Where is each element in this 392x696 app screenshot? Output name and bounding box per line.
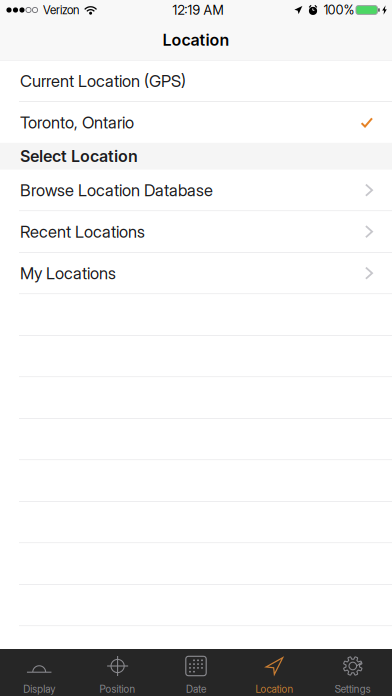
staticText: 12:19 AM — [172, 2, 223, 18]
button[interactable]: Current Location (GPS) — [0, 61, 392, 101]
button[interactable]: Recent Locations — [0, 211, 392, 252]
button[interactable]: Display — [0, 649, 78, 696]
button[interactable]: Toronto, Ontario — [0, 102, 392, 143]
staticText: Select Location — [20, 147, 138, 166]
staticText: Current Location (GPS) — [20, 71, 186, 91]
staticText: Toronto, Ontario — [20, 112, 134, 132]
staticText: Verizon — [43, 3, 79, 17]
staticText: Recent Locations — [20, 222, 145, 242]
staticText: My Locations — [20, 263, 116, 283]
button[interactable]: Date — [157, 649, 235, 696]
button[interactable]: Position — [78, 649, 157, 696]
button[interactable]: My Locations — [0, 253, 392, 293]
staticText: 100% — [324, 2, 354, 17]
staticText: Location — [255, 683, 293, 695]
staticText: Location — [162, 30, 229, 50]
button[interactable]: Location — [235, 649, 314, 696]
button[interactable]: Browse Location Database — [0, 170, 392, 210]
button[interactable]: Settings — [314, 649, 392, 696]
staticText: Date — [186, 683, 206, 695]
staticText: Settings — [335, 683, 371, 695]
staticText: Position — [100, 683, 136, 695]
staticText: Display — [23, 683, 55, 695]
staticText: Browse Location Database — [20, 180, 213, 200]
